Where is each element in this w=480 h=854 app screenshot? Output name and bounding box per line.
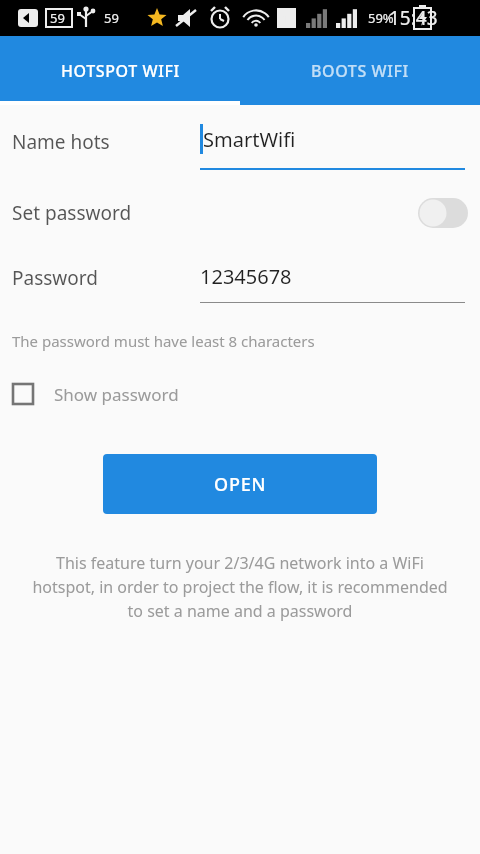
staticText: Name hots <box>12 129 110 155</box>
staticText: 12345678 <box>200 263 292 290</box>
button[interactable]: OPEN <box>103 454 377 514</box>
button[interactable]: Set password toggle <box>418 198 468 228</box>
staticText: SmartWifi <box>203 126 296 153</box>
staticText: Show password <box>54 383 179 406</box>
staticText: 59 <box>104 9 119 27</box>
button[interactable]: HOTSPOT WIFI <box>0 36 240 105</box>
button[interactable]: SmartWifi <box>200 114 465 170</box>
staticText: 59 <box>50 9 65 27</box>
button[interactable]: 12345678 <box>200 253 465 303</box>
staticText: Set password <box>12 200 132 226</box>
staticText: This feature turn your 2/3/4G network in… <box>30 552 450 622</box>
staticText: 59% <box>368 9 394 27</box>
staticText: OPEN <box>214 472 267 497</box>
staticText: The password must have least 8 character… <box>12 331 315 351</box>
button[interactable]: Set password <box>0 179 480 247</box>
staticText: BOOTS WIFI <box>311 60 409 82</box>
button[interactable]: BOOTS WIFI <box>240 36 480 105</box>
button[interactable]: Show password <box>12 376 179 412</box>
staticText: Password <box>12 265 98 291</box>
staticText: HOTSPOT WIFI <box>61 60 180 82</box>
staticText: 15:43 <box>389 5 438 31</box>
